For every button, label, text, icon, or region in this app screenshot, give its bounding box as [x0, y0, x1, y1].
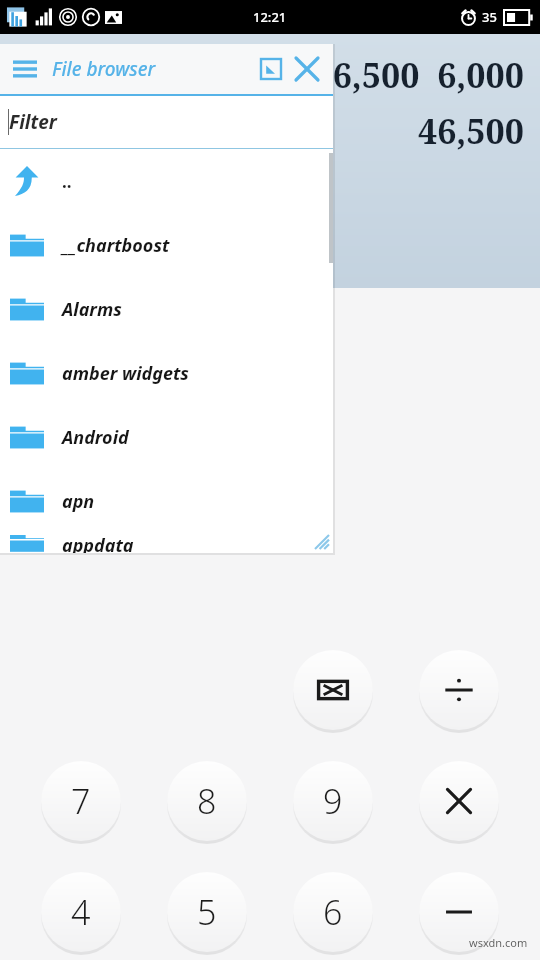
button[interactable]: Menu — [10, 54, 40, 84]
button[interactable]: Restore — [255, 53, 287, 85]
staticText: 35 — [482, 8, 497, 26]
button[interactable]: 8 — [167, 761, 247, 841]
button[interactable]: 9 — [293, 761, 373, 841]
staticText: 4 — [71, 889, 91, 935]
staticText: .. — [62, 170, 72, 193]
staticText: __chartboost — [62, 233, 170, 258]
staticText: 6 — [323, 889, 343, 935]
staticText: 8 — [197, 778, 217, 824]
button[interactable]: Alarms — [0, 277, 333, 341]
button[interactable]: Minus — [419, 872, 499, 952]
button[interactable]: 6 — [293, 872, 373, 952]
button[interactable]: 7 — [41, 761, 121, 841]
button[interactable]: amber widgets — [0, 341, 333, 405]
button[interactable]: 4 — [41, 872, 121, 952]
staticText: appdata — [62, 533, 134, 553]
button[interactable]: Divide — [419, 650, 499, 730]
button[interactable]: Android — [0, 405, 333, 469]
staticText: 7 — [71, 778, 91, 824]
button[interactable]: apn — [0, 469, 333, 533]
button[interactable]: Close — [291, 53, 323, 85]
staticText: 12:21 — [253, 8, 287, 26]
staticText: Filter — [9, 109, 57, 135]
staticText: amber widgets — [62, 361, 189, 386]
staticText: Alarms — [62, 297, 122, 322]
staticText: File browser — [52, 56, 156, 82]
button[interactable]: Clear — [293, 650, 373, 730]
button[interactable]: __chartboost — [0, 213, 333, 277]
button[interactable]: Multiply — [419, 761, 499, 841]
staticText: apn — [62, 489, 95, 514]
staticText: 5 — [197, 889, 217, 935]
button[interactable]: 5 — [167, 872, 247, 952]
button[interactable]: appdata — [0, 533, 333, 553]
staticText: wsxdn.com — [469, 935, 528, 950]
staticText: 6,500 6,000 — [332, 52, 524, 98]
staticText: 46,500 — [417, 108, 524, 154]
button[interactable]: .. — [0, 149, 333, 213]
staticText: Android — [62, 425, 129, 450]
staticText: 9 — [323, 778, 343, 824]
